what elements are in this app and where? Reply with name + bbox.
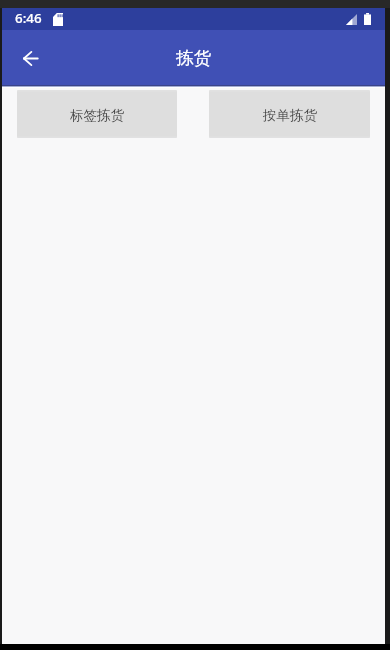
staticText: 按单拣货 <box>263 107 317 124</box>
staticText: 标签拣货 <box>70 107 124 124</box>
staticText: 拣货 <box>176 47 211 69</box>
button[interactable]: 按单拣货 <box>209 90 370 138</box>
button[interactable]: 标签拣货 <box>17 90 177 138</box>
button[interactable]: Back <box>12 40 48 76</box>
staticText: 6:46 <box>15 9 42 27</box>
